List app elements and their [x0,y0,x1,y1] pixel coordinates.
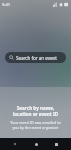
staticText: Search by name, location or event ID [7,105,64,117]
button[interactable]: Recent apps [51,139,61,149]
button[interactable]: Home [31,139,41,149]
staticText: Search for an event [16,55,57,61]
button[interactable]: Search for an event [5,52,66,63]
button[interactable]: Back [10,139,20,149]
staticText: 9:41 [2,2,10,7]
staticText: Your event ID was emailed to you by the … [7,120,64,130]
